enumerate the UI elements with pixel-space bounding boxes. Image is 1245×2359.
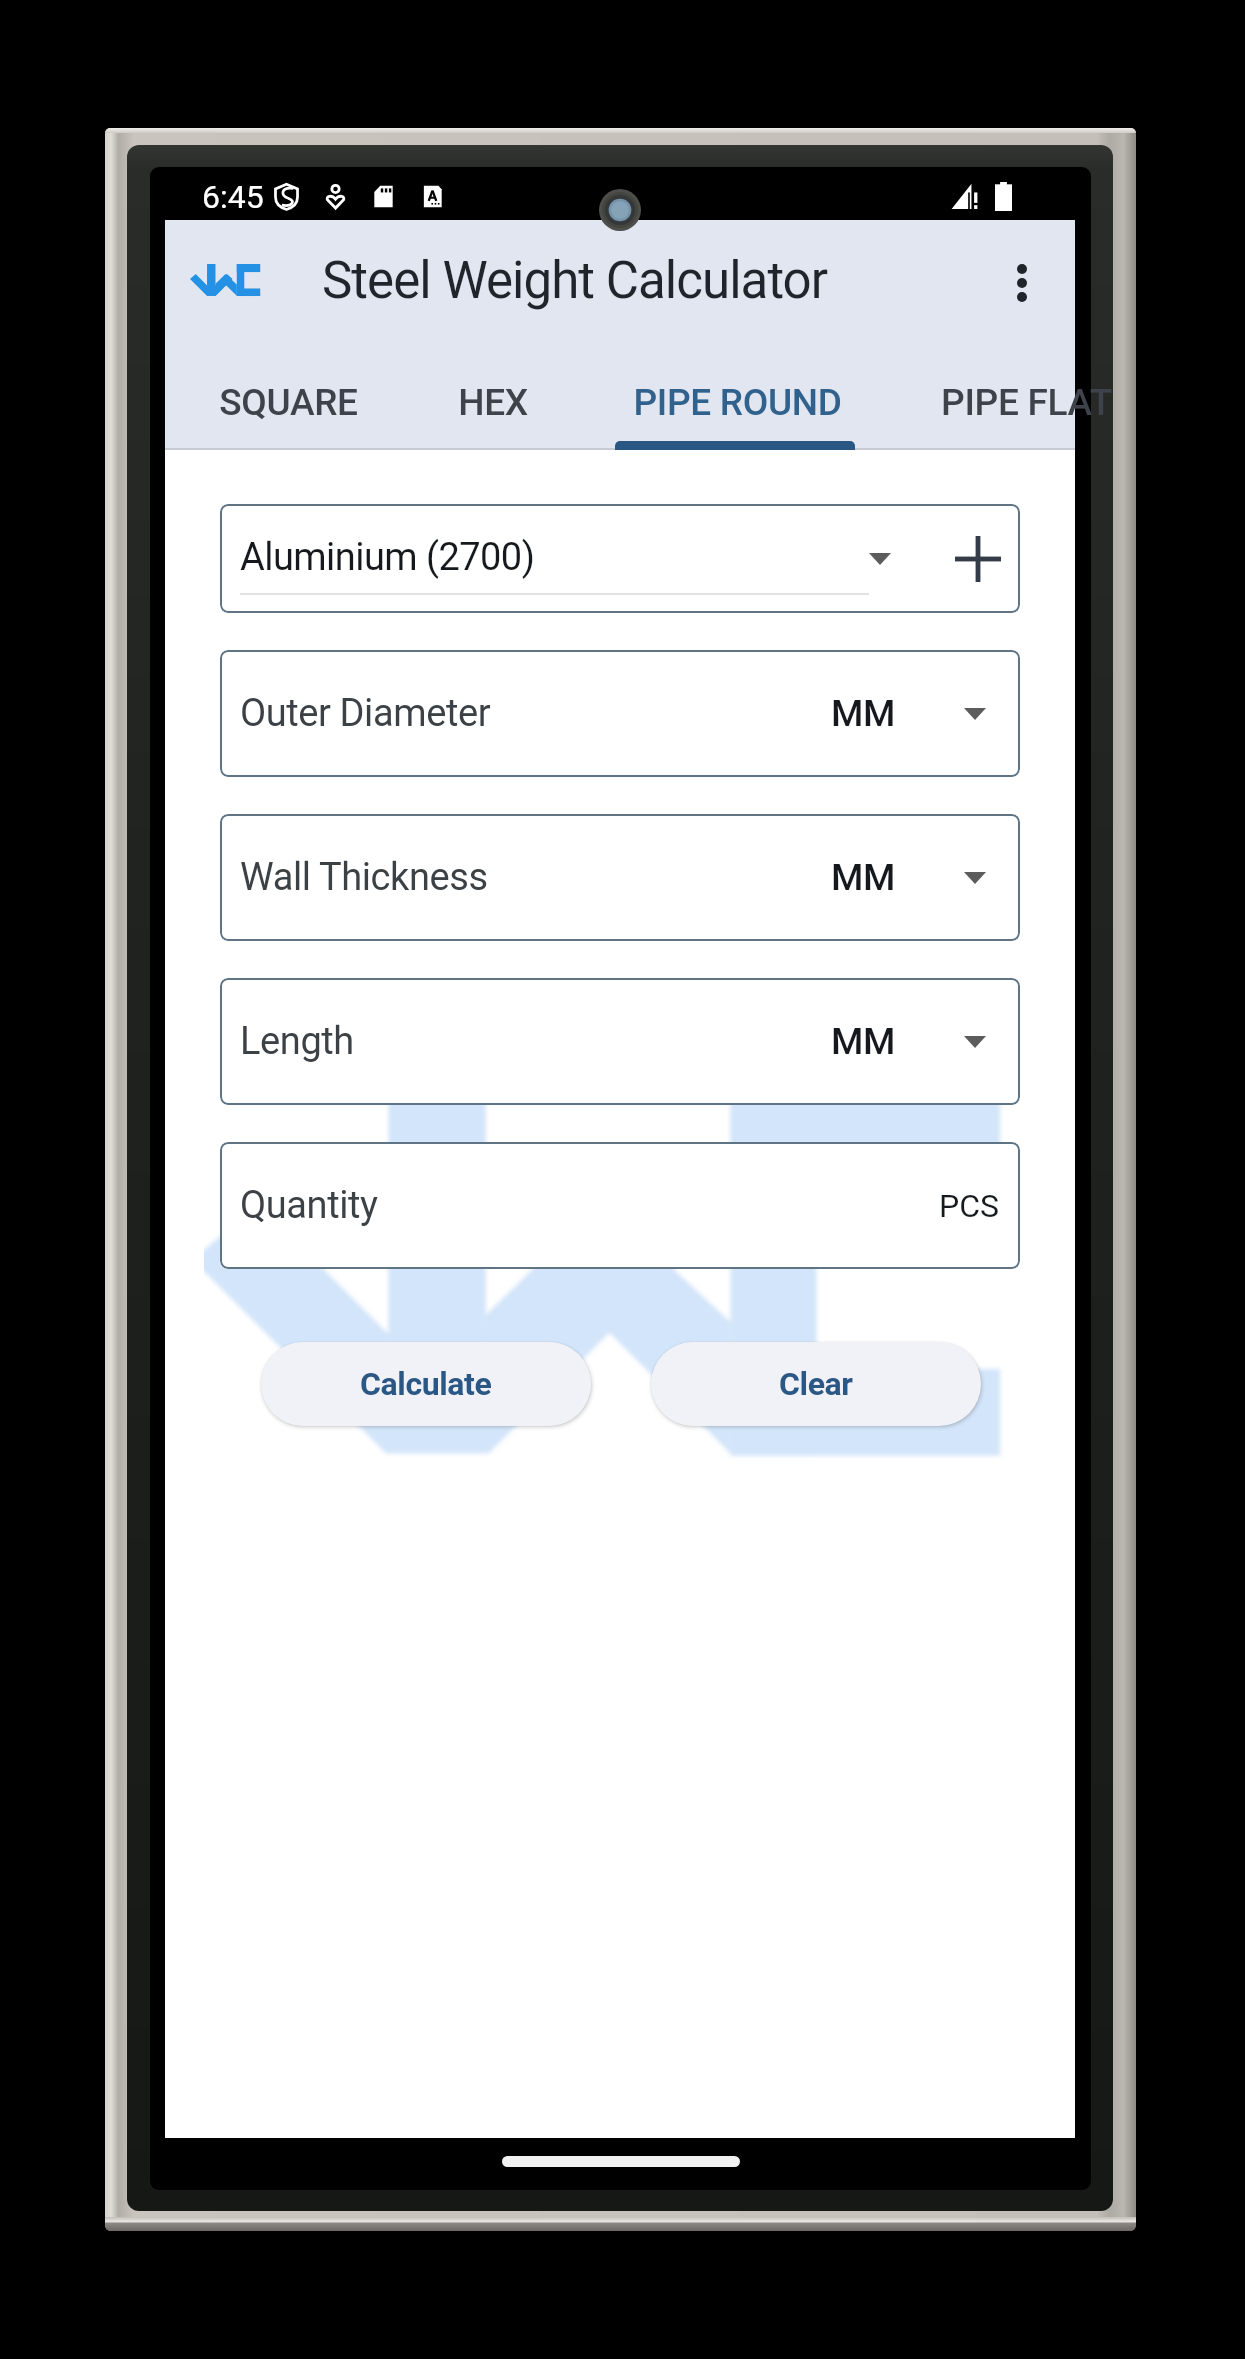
button[interactable]: Quantity (220, 1142, 1020, 1269)
button[interactable]: Calculate (261, 1342, 591, 1426)
staticText: Outer Diameter (240, 691, 491, 736)
button[interactable]: Aluminium (2700) (220, 504, 1020, 613)
staticText: PCS (939, 1187, 1000, 1225)
button[interactable]: PIPE ROUND (595, 345, 879, 450)
button[interactable]: Outer Diameter (220, 650, 1020, 777)
staticText: MM (831, 692, 896, 735)
button[interactable]: Length (220, 978, 1020, 1105)
staticText: PIPE FLAT (941, 381, 1112, 424)
staticText: MM (831, 856, 896, 899)
staticText: SQUARE (219, 381, 358, 424)
staticText: Quantity (240, 1183, 378, 1228)
button[interactable]: Wall Thickness (220, 814, 1020, 941)
button[interactable]: PIPE FLAT (901, 345, 1151, 450)
button[interactable]: Clear (651, 1342, 981, 1426)
button[interactable]: SQUARE (185, 345, 391, 450)
staticText: Length (240, 1019, 354, 1064)
button[interactable]: HEX (391, 345, 595, 450)
staticText: 6:45 (202, 178, 264, 216)
button[interactable]: Add material (950, 531, 1006, 587)
staticText: Clear (779, 1365, 853, 1403)
button[interactable]: More options (987, 248, 1057, 318)
staticText: Wall Thickness (240, 855, 488, 900)
staticText: PIPE ROUND (633, 381, 842, 424)
staticText: Calculate (360, 1365, 492, 1403)
staticText: MM (831, 1020, 896, 1063)
staticText: Aluminium (2700) (240, 535, 535, 580)
staticText: HEX (458, 381, 528, 424)
staticText: Steel Weight Calculator (322, 251, 828, 311)
